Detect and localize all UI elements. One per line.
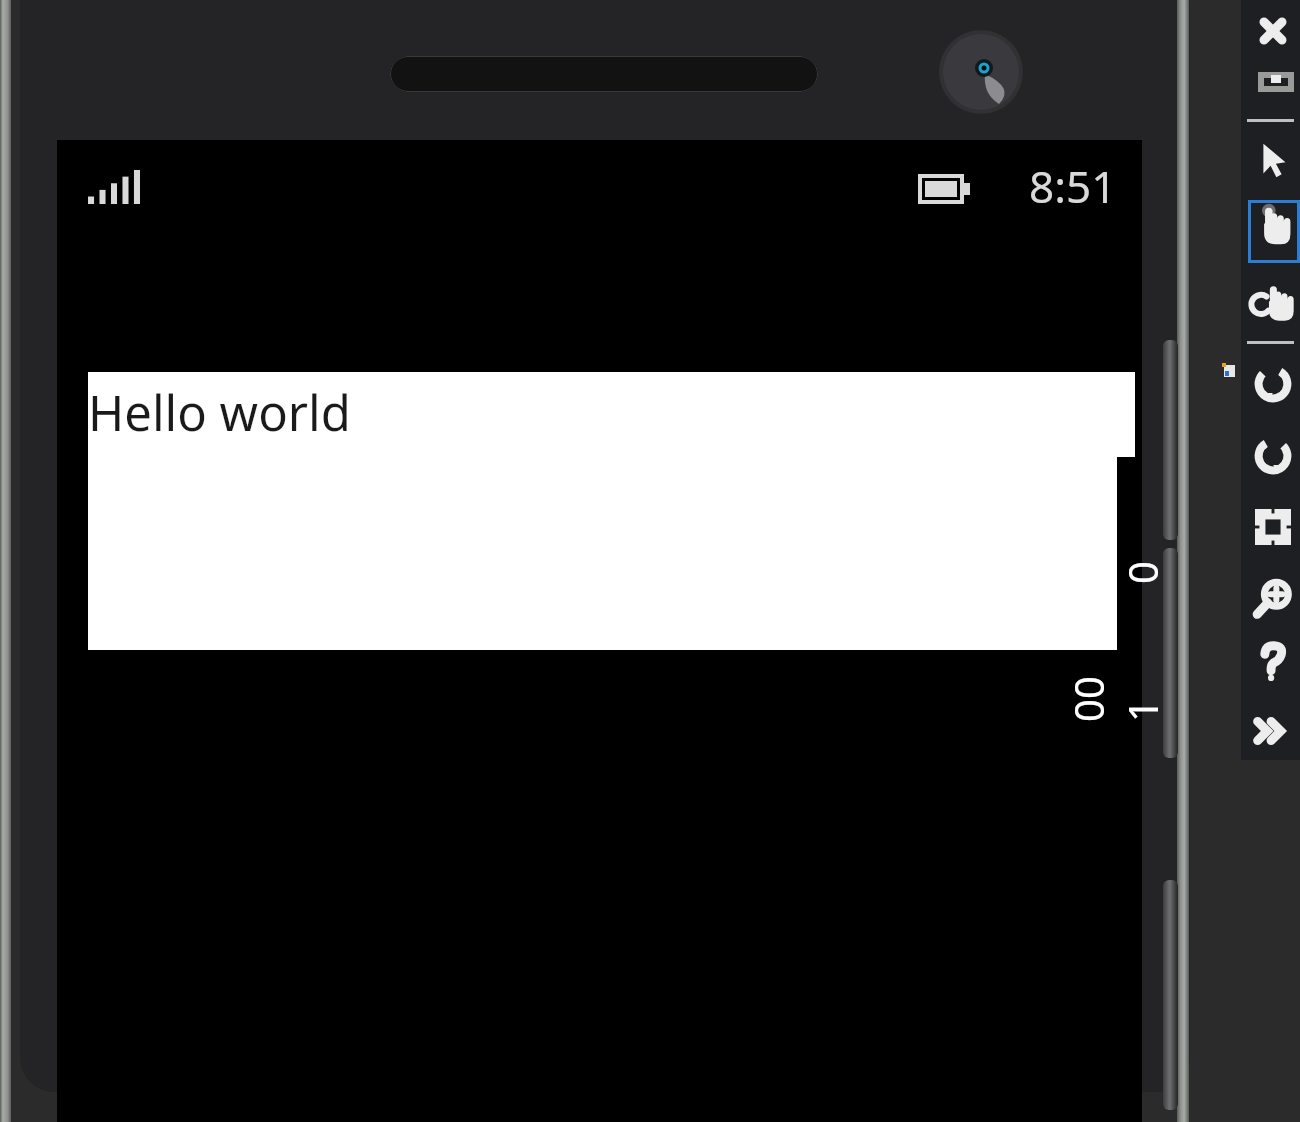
staticText: 000 bbox=[1061, 532, 1169, 584]
button[interactable]: Zoom bbox=[1245, 568, 1300, 630]
button[interactable]: Take screenshot bbox=[1245, 496, 1300, 558]
staticText: 8:51 bbox=[1029, 156, 1117, 216]
staticText: 001 bbox=[1061, 670, 1169, 722]
button[interactable]: More bbox=[1245, 700, 1300, 762]
button[interactable]: Help bbox=[1245, 632, 1300, 694]
button[interactable]: Select bbox=[1245, 128, 1300, 190]
button[interactable]: Hello world bbox=[88, 372, 1135, 650]
button[interactable]: Swipe gesture bbox=[1245, 272, 1300, 334]
button[interactable]: Minimize bbox=[1245, 52, 1300, 114]
button[interactable]: Rotate left bbox=[1245, 352, 1300, 414]
staticText: Hello world bbox=[88, 379, 351, 446]
button[interactable]: Rotate right bbox=[1245, 424, 1300, 486]
button[interactable]: Close bbox=[1245, 0, 1300, 62]
button[interactable]: Tap gesture bbox=[1248, 200, 1300, 263]
